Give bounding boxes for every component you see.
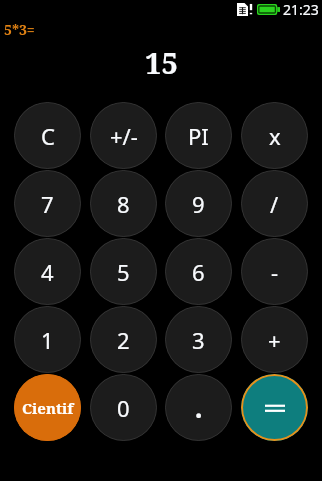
button[interactable]: 5 (90, 238, 157, 305)
staticText: 4 (41, 257, 54, 287)
button[interactable]: PI (165, 102, 232, 169)
button[interactable]: Cientif (14, 374, 81, 441)
button[interactable]: + (241, 306, 308, 373)
staticText: 21:23 (283, 0, 319, 18)
staticText: 0 (117, 393, 130, 423)
staticText: 8 (117, 189, 130, 219)
staticText: 1 (41, 325, 54, 355)
staticText: 15 (145, 43, 178, 82)
button[interactable]: . (165, 374, 232, 441)
staticText: C (41, 121, 55, 151)
staticText: - (271, 257, 279, 287)
staticText: + (268, 325, 281, 355)
button[interactable]: C (14, 102, 81, 169)
button[interactable]: +/- (90, 102, 157, 169)
button[interactable]: 9 (165, 170, 232, 237)
button[interactable]: Equals (241, 374, 308, 441)
button[interactable]: 7 (14, 170, 81, 237)
button[interactable]: 6 (165, 238, 232, 305)
staticText: 6 (192, 257, 205, 287)
button[interactable]: x (241, 102, 308, 169)
button[interactable]: 1 (14, 306, 81, 373)
button[interactable]: 2 (90, 306, 157, 373)
staticText: Cientif (22, 398, 74, 418)
staticText: PI (188, 121, 209, 151)
staticText: x (269, 121, 281, 151)
staticText: 9 (192, 189, 205, 219)
button[interactable]: - (241, 238, 308, 305)
button[interactable]: 3 (165, 306, 232, 373)
staticText: 3 (192, 325, 205, 355)
button[interactable]: 0 (90, 374, 157, 441)
staticText: 2 (117, 325, 130, 355)
staticText: +/- (110, 121, 138, 151)
staticText: / (270, 189, 279, 219)
staticText: 5*3= (4, 20, 35, 39)
button[interactable]: 4 (14, 238, 81, 305)
staticText: 5 (117, 257, 130, 287)
staticText: 7 (41, 189, 54, 219)
button[interactable]: / (241, 170, 308, 237)
button[interactable]: 8 (90, 170, 157, 237)
staticText: . (195, 390, 203, 425)
